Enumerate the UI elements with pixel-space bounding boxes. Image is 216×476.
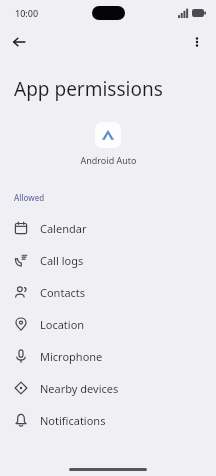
staticText: App permissions [14, 76, 163, 102]
button[interactable]: Microphone [0, 340, 216, 372]
staticText: Contacts [40, 285, 86, 300]
staticText: Microphone [40, 349, 103, 364]
button[interactable]: Calendar [0, 212, 216, 244]
button[interactable]: Call logs [0, 244, 216, 276]
staticText: Android Auto [80, 154, 137, 166]
staticText: Nearby devices [40, 381, 119, 396]
staticText: Location [40, 317, 85, 332]
button[interactable]: Location [0, 308, 216, 340]
button[interactable]: Back [7, 30, 31, 54]
staticText: Calendar [40, 221, 87, 236]
button[interactable]: Contacts [0, 276, 216, 308]
staticText: 10:00 [15, 7, 39, 19]
staticText: Notifications [40, 413, 106, 428]
button[interactable]: Nearby devices [0, 372, 216, 404]
staticText: Allowed [14, 192, 45, 203]
button[interactable]: More options [185, 30, 209, 54]
staticText: Call logs [40, 253, 84, 268]
button[interactable]: Notifications [0, 404, 216, 436]
